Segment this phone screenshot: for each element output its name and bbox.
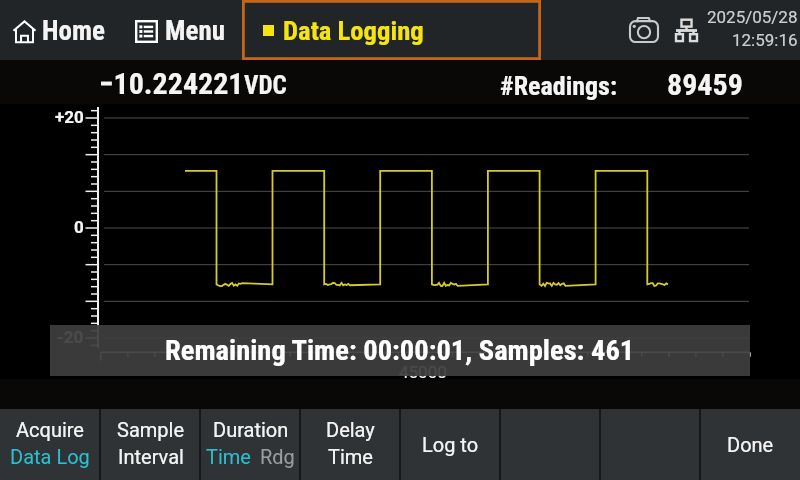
staticText: Data Log bbox=[10, 445, 90, 468]
staticText: Sample bbox=[117, 418, 184, 441]
button[interactable] bbox=[500, 409, 600, 480]
staticText: #Readings: bbox=[500, 71, 618, 101]
button[interactable]: Menu bbox=[130, 1, 230, 61]
staticText: 89459 bbox=[667, 67, 743, 102]
button[interactable] bbox=[600, 409, 700, 480]
button[interactable]: Sample bbox=[100, 409, 200, 480]
staticText: Rdg bbox=[260, 445, 295, 468]
staticText: 12:59:16 bbox=[732, 30, 798, 50]
staticText: Home bbox=[42, 15, 105, 47]
staticText: Done bbox=[727, 433, 774, 456]
button[interactable]: Delay bbox=[300, 409, 400, 480]
staticText: Interval bbox=[118, 445, 184, 468]
staticText: Time bbox=[328, 445, 373, 468]
staticText: Acquire bbox=[16, 418, 84, 441]
staticText: VDC bbox=[244, 71, 287, 100]
staticText: 2025/05/28 bbox=[707, 7, 798, 27]
staticText: -20 bbox=[57, 327, 84, 347]
staticText: Remaining Time: 00:00:01, Samples: 461 bbox=[165, 334, 635, 367]
button[interactable]: 2025/05/28 bbox=[700, 7, 798, 50]
button[interactable]: Home bbox=[8, 1, 110, 61]
button[interactable]: Acquire bbox=[0, 409, 100, 480]
staticText: +20 bbox=[55, 107, 84, 127]
button[interactable]: Log to bbox=[400, 409, 500, 480]
button[interactable]: Network status bbox=[671, 10, 701, 50]
staticText: −10.224221 bbox=[99, 66, 244, 101]
staticText: Menu bbox=[165, 15, 225, 47]
staticText: 0 bbox=[74, 217, 84, 237]
button[interactable]: Done bbox=[700, 409, 800, 480]
button[interactable]: Duration bbox=[200, 409, 300, 480]
staticText: Delay bbox=[326, 418, 375, 441]
button[interactable]: Data Logging bbox=[242, 0, 541, 60]
staticText: Time bbox=[206, 445, 251, 468]
staticText: 45000 bbox=[399, 362, 447, 382]
staticText: Data Logging bbox=[283, 15, 424, 46]
staticText: Log to bbox=[422, 433, 479, 456]
staticText: Duration bbox=[213, 418, 289, 441]
button[interactable]: Screenshot bbox=[621, 10, 666, 50]
